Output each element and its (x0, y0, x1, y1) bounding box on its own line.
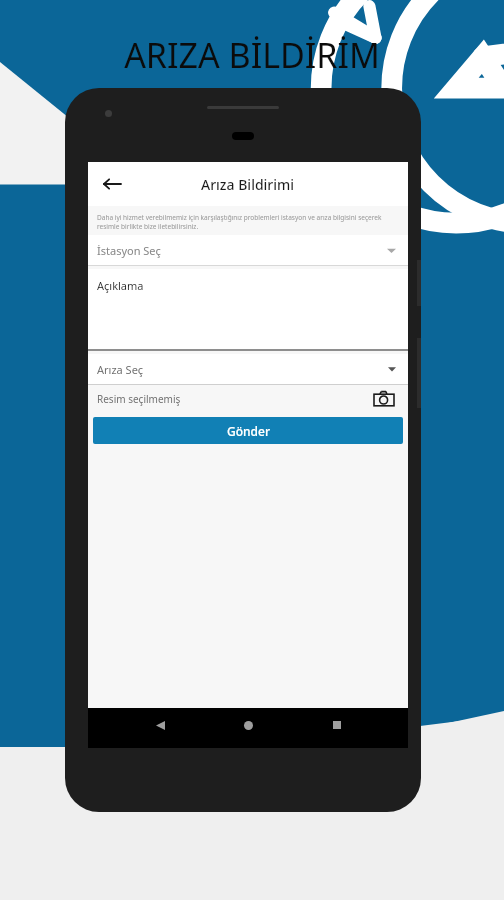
staticText: Resim seçilmemiş (97, 392, 373, 406)
button[interactable]: İstasyon Seç (88, 235, 408, 265)
button[interactable]: Resim seçilmemiş (88, 385, 408, 413)
button[interactable]: Back (143, 708, 177, 742)
staticText: Daha iyi hizmet verebilmemiz için karşıl… (97, 213, 399, 231)
button[interactable]: Açıklama (88, 269, 408, 349)
button[interactable]: Gönder (93, 417, 403, 444)
staticText: Açıklama (97, 278, 144, 293)
button[interactable]: Back (96, 168, 128, 200)
button[interactable]: Home (231, 708, 265, 742)
button[interactable]: Recent apps (320, 708, 354, 742)
staticText: Arıza Bildirimi (201, 175, 295, 194)
staticText: Gönder (227, 423, 270, 439)
staticText: ARIZA BİLDİRİM (0, 32, 504, 78)
staticText: Arıza Seç (97, 362, 144, 377)
button[interactable]: Arıza Seç (88, 354, 408, 384)
other: Take photo (373, 388, 395, 410)
staticText: İstasyon Seç (97, 243, 161, 258)
